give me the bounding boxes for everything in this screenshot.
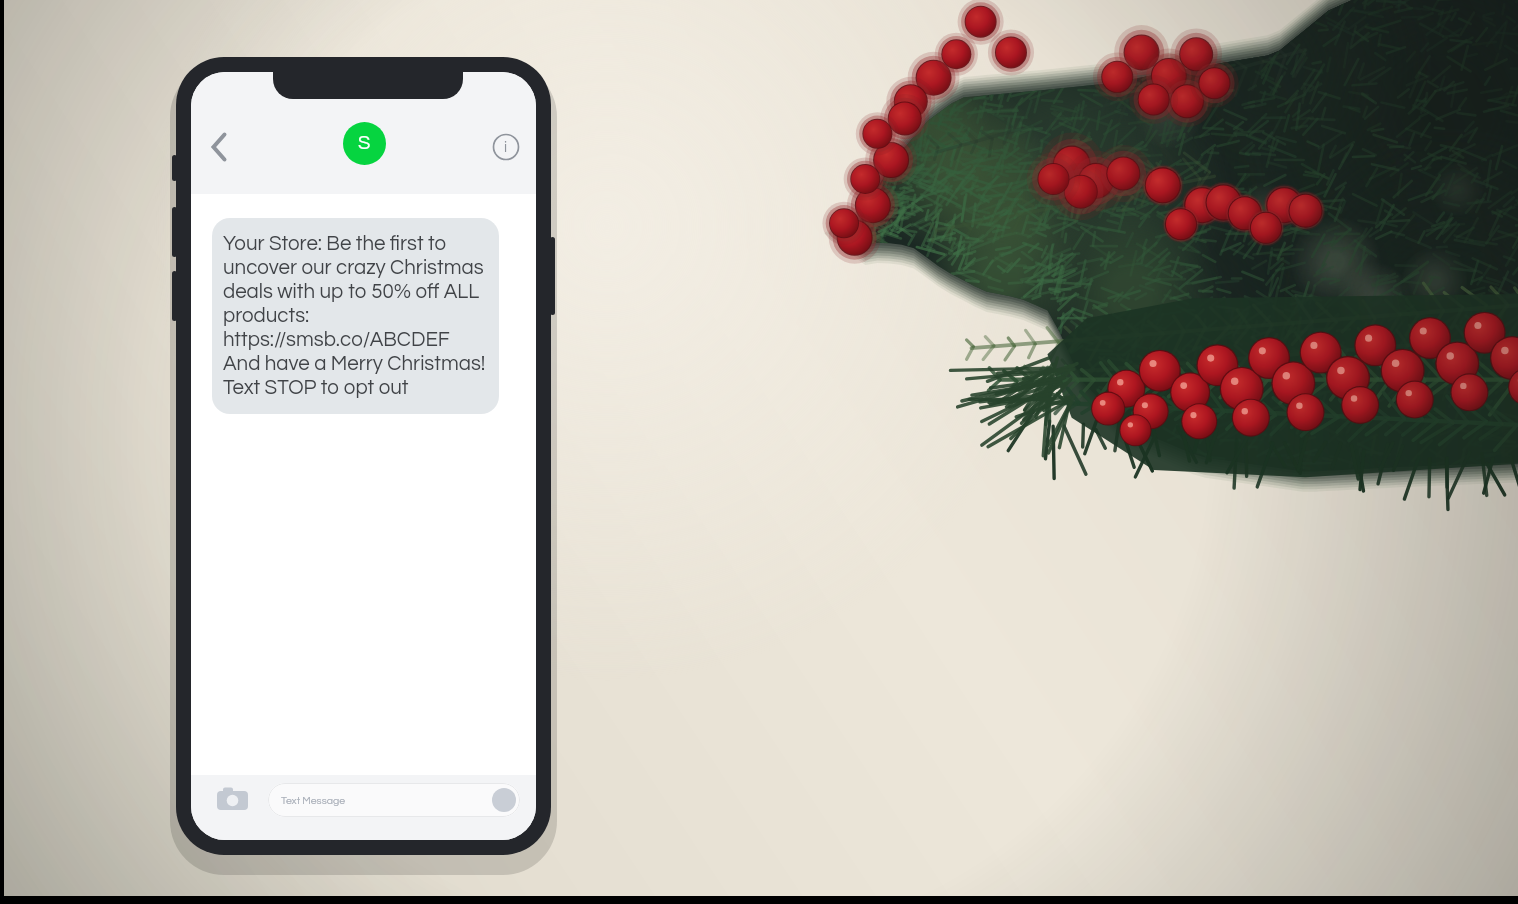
button[interactable]: Camera	[217, 786, 248, 812]
button[interactable]: S	[343, 122, 386, 165]
button[interactable]: Text Message	[268, 783, 520, 817]
button[interactable]: Send	[492, 788, 516, 812]
button[interactable]: Your Store: Be the first to uncover our …	[212, 218, 499, 414]
button[interactable]: Back	[202, 134, 230, 162]
staticText: Text Message	[281, 795, 346, 806]
staticText: Your Store: Be the first to uncover our …	[223, 233, 486, 398]
staticText: i	[504, 140, 508, 155]
staticText: S	[358, 133, 371, 154]
button[interactable]: Details	[493, 134, 519, 160]
